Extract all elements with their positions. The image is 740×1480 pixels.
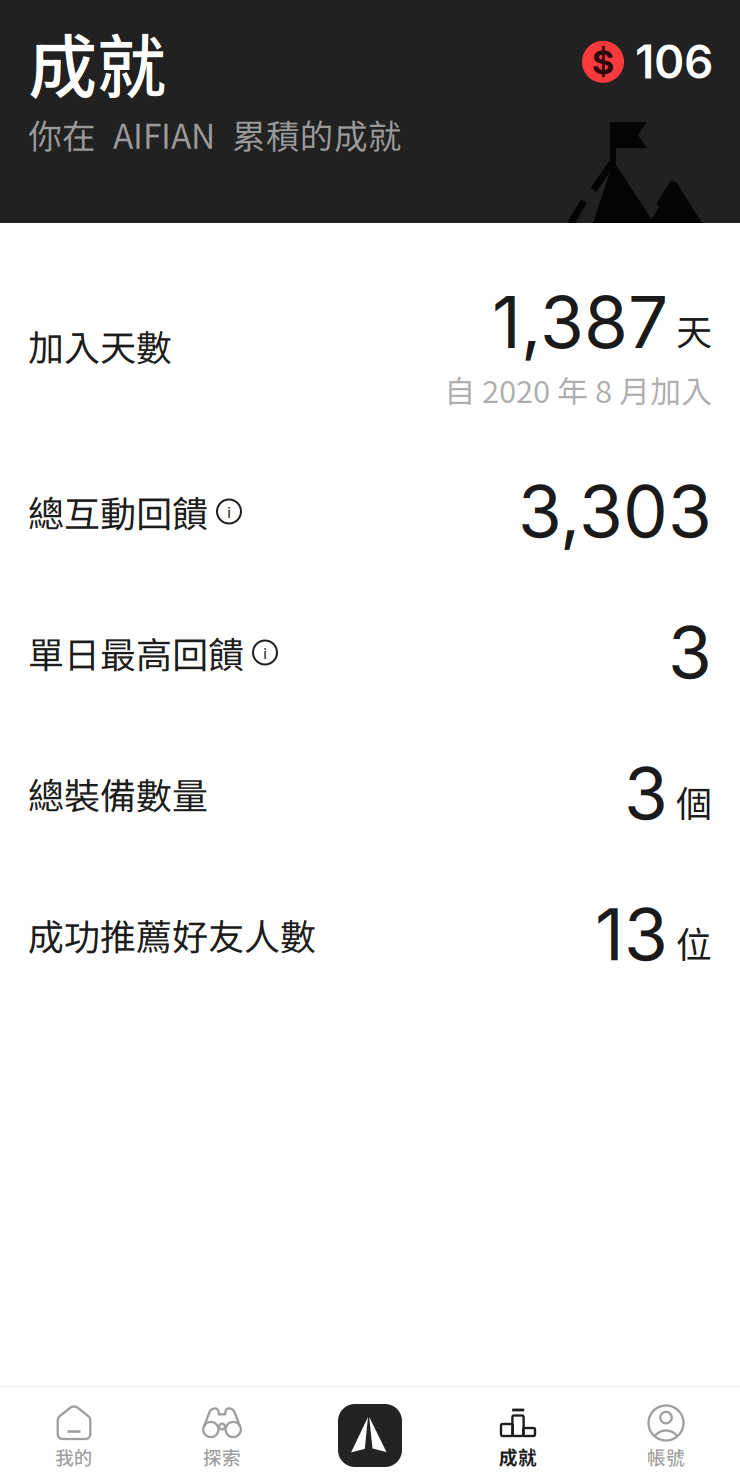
staticText: 3 [668, 609, 712, 695]
staticText: 探索 [203, 1443, 241, 1470]
button[interactable]: Post [296, 1386, 444, 1479]
staticText: 總裝備數量 [28, 767, 208, 819]
button[interactable]: 成就 [444, 1386, 592, 1479]
button[interactable]: 加入天數 [0, 250, 740, 441]
staticText: 位 [676, 916, 712, 968]
staticText: 帳號 [647, 1443, 685, 1470]
staticText: 自 2020 年 8 月加入 [444, 367, 712, 412]
button[interactable]: 探索 [148, 1386, 296, 1479]
staticText: 成功推薦好友人數 [28, 908, 316, 960]
button[interactable]: 單日最高回饋 [0, 582, 740, 723]
staticText: $ [592, 41, 614, 82]
button[interactable]: 成功推薦好友人數 [0, 864, 740, 1005]
staticText: 單日最高回饋 [28, 626, 244, 678]
staticText: 總互動回饋 [28, 485, 208, 537]
staticText: 106 [635, 34, 713, 90]
staticText: 3 [624, 750, 668, 836]
staticText: 你在 AIFIAN 累積的成就 [28, 110, 402, 158]
staticText: 加入天數 [28, 319, 172, 371]
staticText: 1,387 [492, 279, 668, 365]
button[interactable]: 總互動回饋 [0, 441, 740, 582]
button[interactable]: 帳號 [592, 1386, 740, 1479]
staticText: 天 [676, 304, 712, 356]
staticText: 成就 [28, 12, 166, 112]
staticText: 成就 [499, 1443, 537, 1470]
staticText: 13 [595, 891, 668, 977]
staticText: 個 [676, 775, 712, 827]
button[interactable]: $ [582, 0, 740, 90]
staticText: i [227, 501, 231, 522]
button[interactable]: 總裝備數量 [0, 723, 740, 864]
button[interactable]: 我的 [0, 1386, 148, 1479]
staticText: i [263, 642, 267, 663]
staticText: 我的 [55, 1443, 93, 1470]
staticText: 3,303 [518, 468, 712, 554]
